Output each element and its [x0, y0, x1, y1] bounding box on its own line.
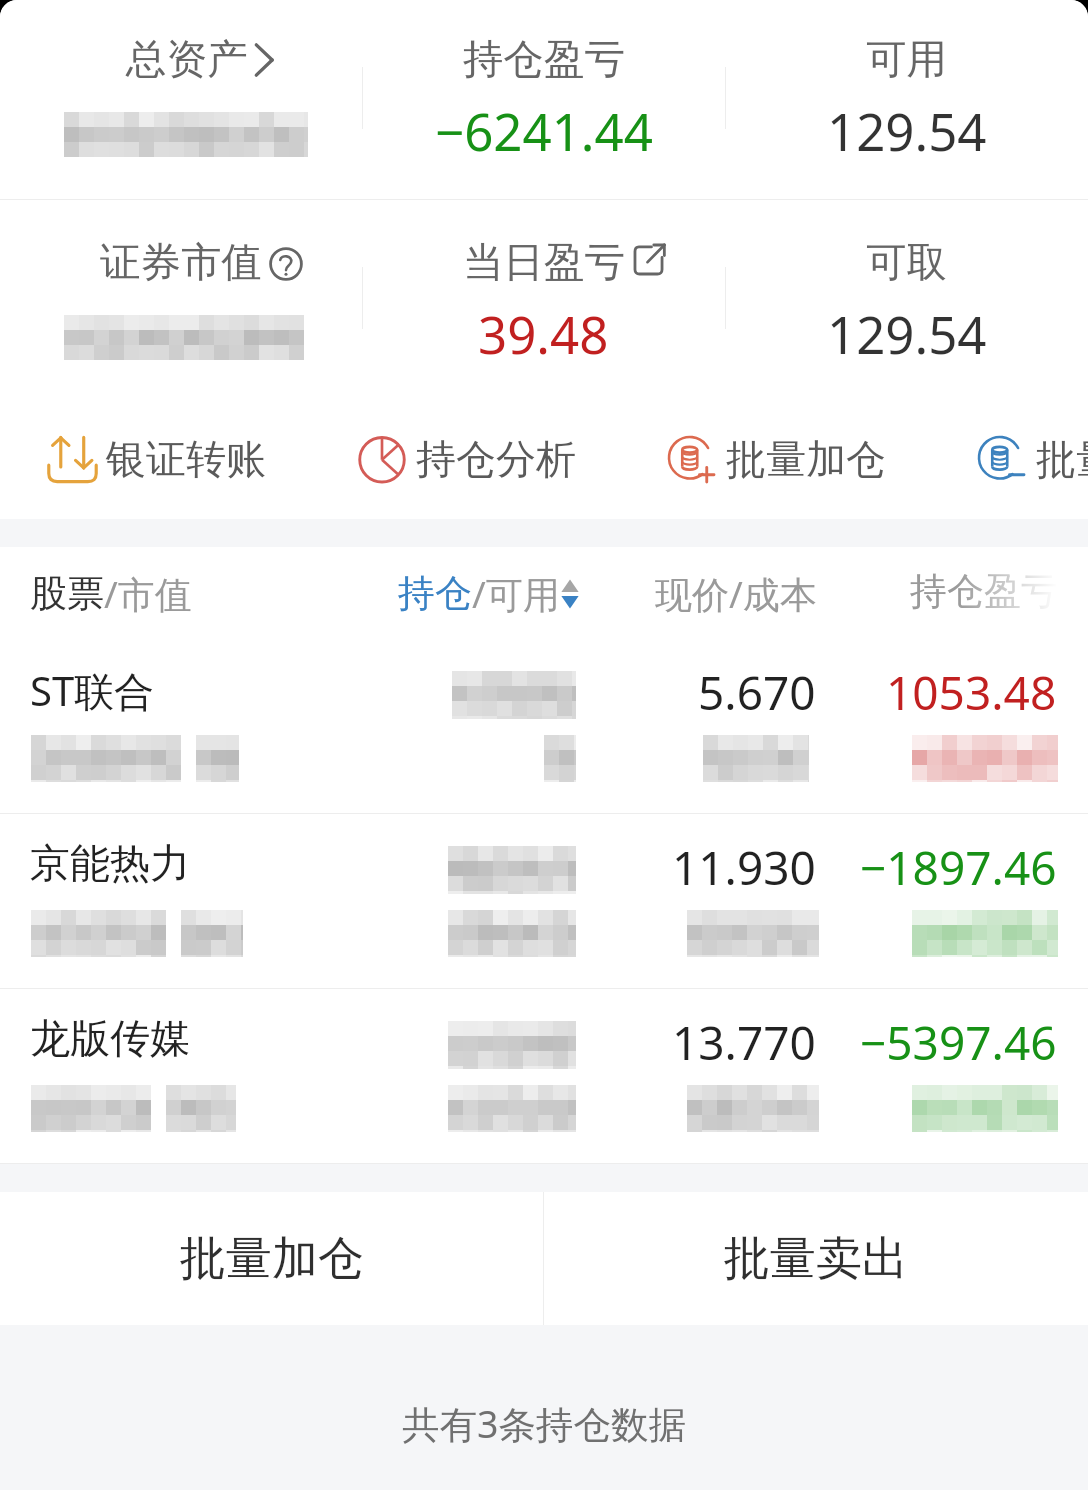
- staticText: 持仓: [398, 570, 472, 617]
- staticText: 批量加仓: [726, 434, 886, 484]
- button[interactable]: 当日盈亏: [362, 200, 725, 399]
- staticText: 129.54: [827, 299, 987, 368]
- button[interactable]: 总资产: [0, 0, 362, 199]
- staticText: /可用: [472, 568, 560, 619]
- button[interactable]: 证券市值: [0, 200, 362, 399]
- staticText: 证券市值: [100, 237, 262, 288]
- staticText: 39.48: [478, 299, 609, 368]
- staticText: 持仓分析: [416, 434, 576, 484]
- button[interactable]: 京能热力: [0, 814, 1088, 989]
- staticText: 批量卖出: [724, 1230, 908, 1288]
- staticText: 批量减仓: [1036, 434, 1088, 484]
- staticText: −1897.46: [860, 836, 1057, 899]
- staticText: 京能热力: [30, 838, 190, 888]
- staticText: 银证转账: [106, 434, 266, 484]
- button[interactable]: ST联合: [0, 639, 1088, 814]
- button[interactable]: 批量卖出: [544, 1192, 1088, 1325]
- staticText: 持仓盈亏: [910, 568, 1058, 615]
- button[interactable]: 可用: [725, 0, 1088, 199]
- staticText: 当日盈亏: [463, 237, 625, 288]
- staticText: ST联合: [30, 663, 155, 718]
- staticText: 可用: [866, 34, 947, 85]
- staticText: −5397.46: [860, 1011, 1057, 1074]
- button[interactable]: 批量加仓: [0, 1192, 543, 1325]
- staticText: 11.930: [672, 836, 816, 899]
- staticText: 批量加仓: [180, 1230, 364, 1288]
- button[interactable]: 可取: [725, 200, 1088, 399]
- other: 展开总资产: [252, 42, 276, 78]
- staticText: 13.770: [672, 1011, 816, 1074]
- staticText: 129.54: [827, 96, 987, 165]
- staticText: 5.670: [698, 661, 816, 724]
- staticText: 可取: [866, 237, 947, 288]
- other: 证券市值说明: [269, 247, 303, 281]
- staticText: /市值: [104, 568, 192, 619]
- staticText: 现价/成本: [655, 568, 817, 619]
- staticText: 股票: [30, 570, 104, 617]
- staticText: 总资产: [126, 34, 248, 85]
- button[interactable]: 批量减仓: [977, 399, 1088, 519]
- other: 当日盈亏详情: [633, 243, 666, 276]
- staticText: 龙版传媒: [30, 1013, 190, 1063]
- staticText: 共有3条持仓数据: [402, 1398, 686, 1449]
- button[interactable]: 持仓盈亏: [362, 0, 725, 199]
- staticText: 持仓盈亏: [463, 34, 625, 85]
- button[interactable]: 持仓分析: [357, 399, 576, 519]
- button[interactable]: 银证转账: [47, 399, 266, 519]
- button[interactable]: 批量加仓: [667, 399, 886, 519]
- staticText: 1053.48: [886, 661, 1057, 724]
- button[interactable]: 龙版传媒: [0, 989, 1088, 1164]
- staticText: −6241.44: [435, 96, 653, 165]
- button[interactable]: 持仓: [398, 568, 579, 619]
